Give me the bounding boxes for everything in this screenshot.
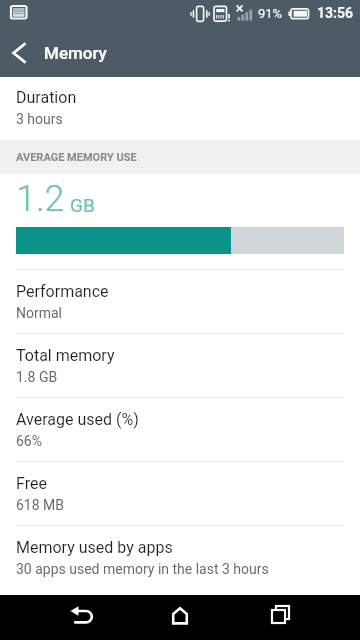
button[interactable]	[0, 595, 120, 640]
button[interactable]: Performance	[0, 270, 360, 333]
button[interactable]: Memory used by apps	[0, 526, 360, 589]
staticText: Memory used by apps	[16, 538, 173, 557]
staticText: 91%	[258, 6, 283, 21]
staticText: Duration	[16, 88, 77, 107]
staticText: 618 MB	[16, 497, 65, 513]
staticText: Free	[16, 474, 47, 493]
button[interactable]	[120, 595, 240, 640]
staticText: Memory	[44, 43, 107, 63]
button[interactable]: Free	[0, 462, 360, 525]
button[interactable]: Total memory	[0, 334, 360, 397]
staticText: 30 apps used memory in the last 3 hours	[16, 561, 269, 577]
staticText: 66%	[16, 433, 42, 449]
button[interactable]: Duration	[0, 77, 360, 140]
staticText: Normal	[16, 305, 63, 321]
staticText: Performance	[16, 282, 109, 301]
button[interactable]	[240, 595, 360, 640]
staticText: Average used (%)	[16, 410, 139, 429]
staticText: Total memory	[16, 346, 115, 365]
staticText: 1.2	[16, 178, 65, 220]
button[interactable]: Average used (%)	[0, 398, 360, 461]
staticText: 13:56	[317, 5, 354, 21]
button[interactable]	[0, 28, 44, 77]
staticText: 1.8 GB	[16, 369, 58, 385]
staticText: 3 hours	[16, 111, 63, 127]
staticText: GB	[70, 194, 95, 216]
staticText: AVERAGE MEMORY USE	[16, 151, 137, 164]
